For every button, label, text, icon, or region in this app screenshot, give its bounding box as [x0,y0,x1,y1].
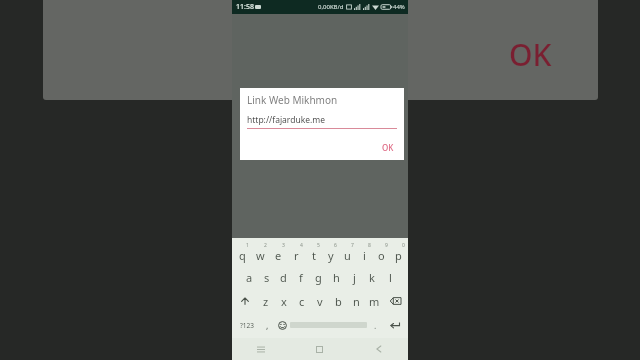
staticText: n [353,294,360,309]
staticText: OK [382,142,394,153]
button[interactable]: d [275,265,292,289]
button[interactable]: . [367,313,383,337]
staticText: y [328,248,334,263]
button[interactable]: 1 [233,241,251,265]
staticText: t [312,248,316,263]
staticText: h [333,270,340,285]
button[interactable]: n [347,289,365,313]
button[interactable]: f [292,265,309,289]
staticText: . [374,319,377,331]
staticText: 5 [317,242,320,249]
button[interactable]: x [275,289,293,313]
staticText: q [239,248,246,263]
staticText: l [389,270,392,285]
button[interactable]: 6 [322,241,339,265]
button[interactable]: z [257,289,275,313]
staticText: x [281,294,287,309]
button[interactable]: s [258,265,275,289]
button[interactable]: c [293,289,311,313]
staticText: 8 [368,242,371,249]
button[interactable]: , [261,313,274,337]
staticText: m [369,294,380,309]
staticText: 2 [264,242,267,249]
staticText: ?123 [240,321,254,330]
button[interactable]: a [241,265,258,289]
staticText: b [335,294,342,309]
staticText: f [299,270,303,285]
staticText: j [353,270,356,285]
staticText: http://fajarduke.me [247,114,326,126]
staticText: OK [509,34,552,75]
button[interactable]: Shift [233,289,257,313]
button[interactable]: Home [290,338,349,360]
button[interactable]: g [309,265,327,289]
button[interactable]: k [363,265,381,289]
button[interactable]: b [329,289,347,313]
staticText: z [263,294,269,309]
button[interactable]: 8 [356,241,373,265]
button[interactable]: OK [372,138,404,157]
button[interactable]: 4 [287,241,305,265]
button[interactable]: 7 [339,241,356,265]
staticText: u [344,248,351,263]
button[interactable]: Space [290,321,367,329]
button[interactable]: m [365,289,383,313]
button[interactable]: j [345,265,363,289]
button[interactable]: Backspace [383,289,407,313]
staticText: 4 [300,242,303,249]
staticText: w [256,248,265,263]
staticText: g [315,270,322,285]
staticText: i [363,248,366,263]
staticText: 0 [402,242,405,249]
button[interactable]: v [311,289,329,313]
staticText: 6 [334,242,337,249]
button[interactable]: Back [349,338,408,360]
button[interactable]: 2 [251,241,269,265]
staticText: 9 [385,242,388,249]
staticText: p [395,248,402,263]
staticText: 3 [282,242,285,249]
staticText: v [317,294,323,309]
button[interactable]: Enter [383,313,407,337]
button[interactable]: l [381,265,399,289]
staticText: 7 [351,242,354,249]
staticText: e [275,248,282,263]
button[interactable]: ?123 [233,313,261,337]
button[interactable]: h [327,265,345,289]
button[interactable]: 5 [305,241,322,265]
staticText: 1 [246,242,249,249]
staticText: 11:58 [236,2,254,12]
staticText: a [246,270,253,285]
staticText: 0,00KB/d [318,3,344,11]
button[interactable]: 9 [373,241,390,265]
button[interactable]: 0 [390,241,407,265]
staticText: c [299,294,305,309]
button[interactable]: 3 [269,241,287,265]
staticText: , [266,319,269,331]
staticText: Link Web Mikhmon [247,93,338,107]
button[interactable]: Emoji [274,313,290,337]
staticText: 44% [393,3,405,11]
staticText: d [280,270,287,285]
staticText: o [378,248,385,263]
staticText: s [264,270,270,285]
button[interactable]: Recents [232,338,290,360]
staticText: r [294,248,299,263]
staticText: k [369,270,375,285]
